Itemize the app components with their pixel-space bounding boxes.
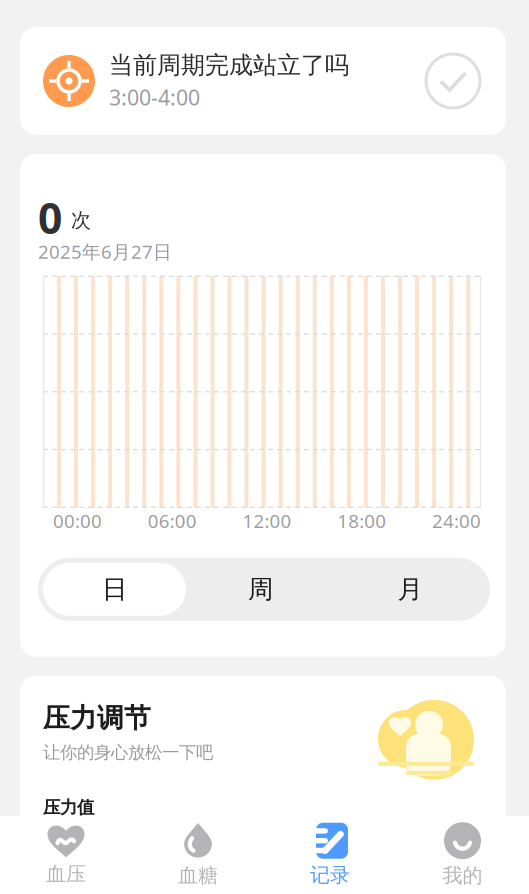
staticText: 3:00-4:00 [109,83,200,111]
staticText: 月 [397,574,422,605]
button[interactable]: 我的 [396,816,529,894]
button[interactable]: 血糖 [132,816,264,894]
staticText: 记录 [310,863,350,887]
staticText: 24:00 [432,508,481,533]
staticText: 我的 [442,863,482,888]
staticText: 日 [102,574,127,605]
staticText: 血糖 [178,863,218,888]
staticText: 压力调节 [43,702,151,735]
button[interactable]: 记录 [264,816,396,894]
button[interactable]: 日 [43,563,186,616]
staticText: 血压 [46,862,86,886]
staticText: 让你的身心放松一下吧 [43,742,213,763]
staticText: 18:00 [337,508,386,533]
staticText: 压力值 [43,797,94,818]
staticText: 次 [71,208,91,233]
staticText: 周 [248,574,273,605]
button[interactable]: 周 [186,563,335,616]
staticText: 0 [38,189,62,246]
button[interactable]: 当前周期完成站立了吗 [20,27,506,135]
staticText: 当前周期完成站立了吗 [109,51,349,80]
staticText: 06:00 [148,508,197,533]
staticText: 00:00 [53,508,102,533]
button[interactable]: 血压 [0,816,132,894]
staticText: 2025年6月27日 [38,239,172,264]
staticText: 12:00 [242,508,291,533]
button[interactable]: 月 [335,563,485,616]
